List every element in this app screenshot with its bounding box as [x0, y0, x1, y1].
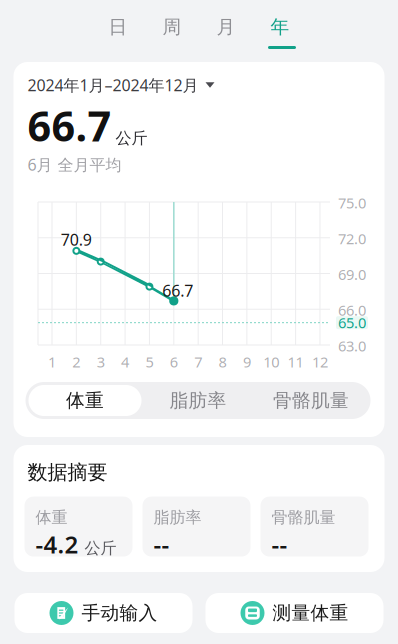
button[interactable]: 脂肪率 [141, 385, 254, 416]
staticText: 骨骼肌量 [273, 389, 349, 412]
staticText: -- [271, 528, 287, 560]
staticText: 75.0 [338, 193, 366, 212]
staticText: 1 [48, 352, 56, 371]
staticText: 12 [312, 352, 328, 371]
staticText: 体重 [35, 508, 67, 527]
button[interactable]: 周 [145, 0, 199, 62]
button[interactable]: 日 [91, 0, 145, 62]
staticText: -- [153, 528, 169, 560]
button[interactable]: 月 [199, 0, 253, 62]
button[interactable]: 手动输入 [14, 593, 192, 633]
staticText: -4.2 [35, 528, 78, 560]
button[interactable]: 年 [253, 0, 307, 62]
staticText: 6月 全月平均 [27, 154, 121, 175]
staticText: 66.7 [27, 98, 111, 153]
staticText: 11 [288, 352, 304, 371]
staticText: 3 [97, 352, 105, 371]
staticText: 周 [162, 15, 181, 38]
staticText: 4 [121, 352, 129, 371]
staticText: 2 [72, 352, 80, 371]
staticText: 骨骼肌量 [271, 508, 335, 527]
staticText: 月 [216, 15, 235, 38]
staticText: 70.9 [61, 229, 92, 250]
staticText: 2024年1月–2024年12月 [27, 74, 198, 96]
staticText: 10 [263, 352, 279, 371]
staticText: 66.7 [162, 280, 193, 301]
button[interactable]: 体重 [28, 385, 141, 416]
staticText: 年 [270, 15, 289, 38]
staticText: 5 [145, 352, 153, 371]
staticText: 数据摘要 [27, 460, 107, 485]
button[interactable]: 测量体重 [205, 593, 383, 633]
staticText: 65.0 [338, 313, 366, 332]
staticText: 8 [218, 352, 226, 371]
staticText: 公斤 [115, 128, 147, 148]
staticText: 测量体重 [272, 601, 348, 624]
staticText: 63.0 [338, 336, 366, 355]
staticText: 69.0 [338, 264, 366, 284]
staticText: 脂肪率 [153, 508, 201, 527]
staticText: 体重 [66, 389, 104, 412]
staticText: 7 [194, 352, 202, 371]
staticText: 手动输入 [81, 601, 157, 624]
staticText: 72.0 [338, 229, 366, 248]
staticText: 6 [170, 352, 178, 371]
button[interactable]: 2024年1月–2024年12月 [27, 75, 214, 95]
staticText: 脂肪率 [169, 389, 226, 412]
staticText: 日 [108, 15, 127, 38]
staticText: 公斤 [84, 538, 116, 558]
staticText: 9 [243, 352, 251, 371]
button[interactable]: 骨骼肌量 [254, 385, 367, 416]
staticText: 66.0 [338, 300, 366, 320]
